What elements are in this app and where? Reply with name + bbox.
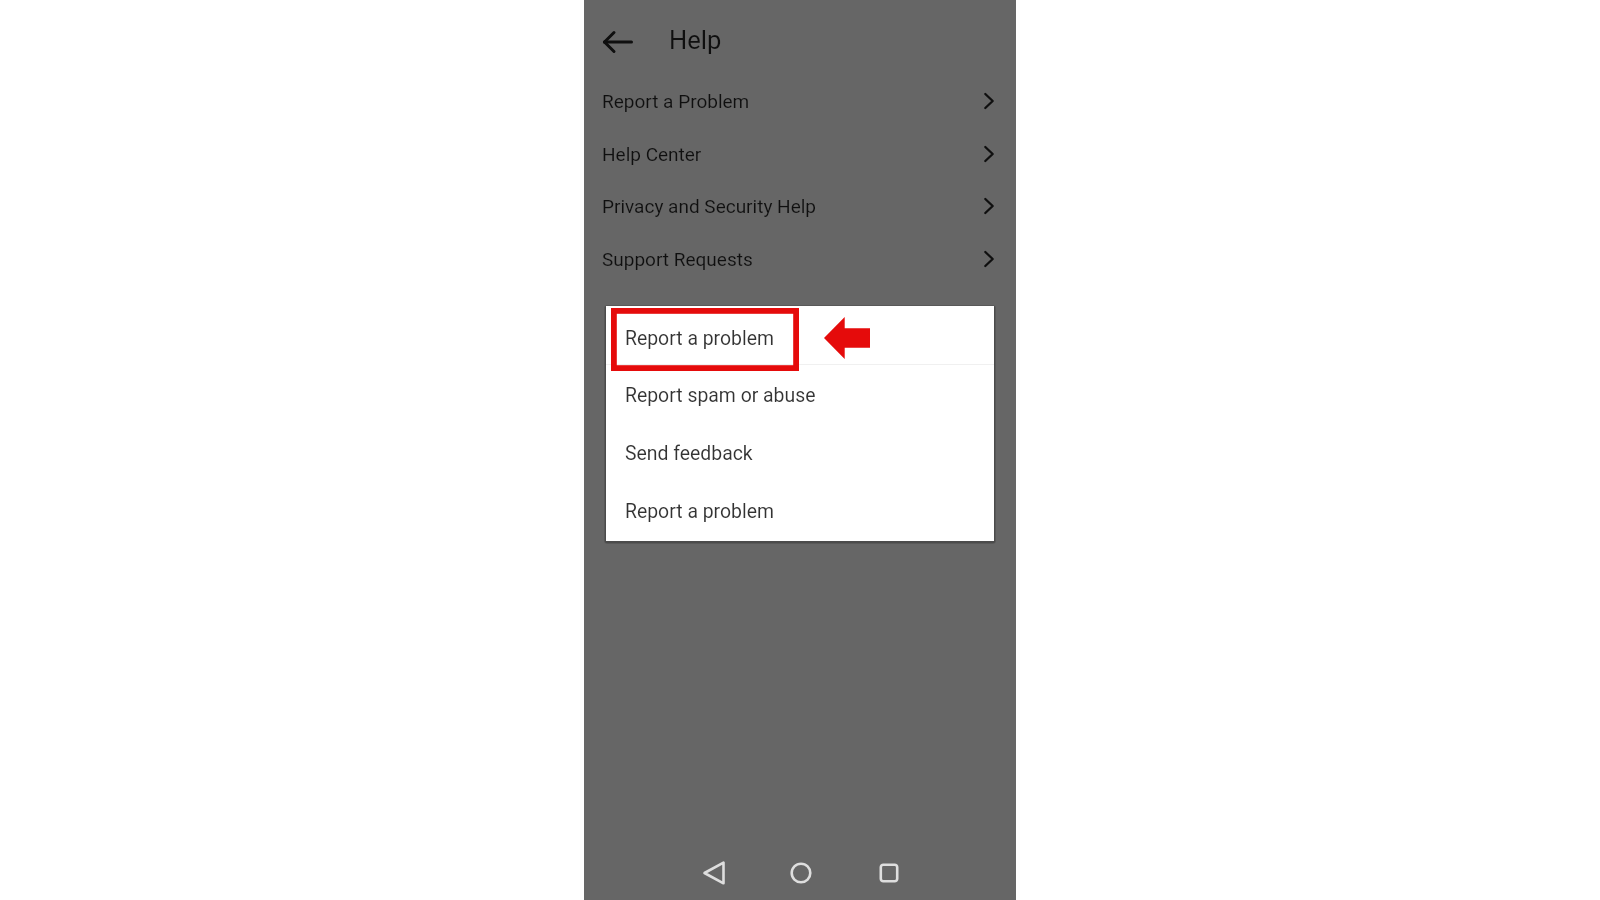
- staticText: Report a problem: [625, 500, 774, 523]
- staticText: Support Requests: [602, 248, 753, 270]
- button[interactable]: Send feedback: [606, 427, 994, 479]
- staticText: Privacy and Security Help: [602, 195, 817, 217]
- button[interactable]: Home: [774, 846, 828, 900]
- button[interactable]: Privacy and Security Help: [584, 179, 1016, 232]
- button[interactable]: Report a problem: [606, 312, 994, 364]
- button[interactable]: Report a problem: [606, 485, 994, 537]
- button[interactable]: Report spam or abuse: [606, 369, 994, 421]
- staticText: Report a problem: [625, 327, 774, 350]
- staticText: Send feedback: [625, 442, 753, 465]
- button[interactable]: Navigate up: [594, 18, 642, 66]
- button[interactable]: Recent apps: [862, 846, 916, 900]
- staticText: Help Center: [602, 143, 702, 165]
- button[interactable]: Help Center: [584, 127, 1016, 180]
- staticText: Report a Problem: [602, 90, 750, 112]
- staticText: Report spam or abuse: [625, 384, 816, 407]
- staticText: Help: [669, 25, 722, 55]
- button[interactable]: Support Requests: [584, 232, 1016, 285]
- button[interactable]: Back: [687, 846, 741, 900]
- button[interactable]: Report a Problem: [584, 74, 1016, 127]
